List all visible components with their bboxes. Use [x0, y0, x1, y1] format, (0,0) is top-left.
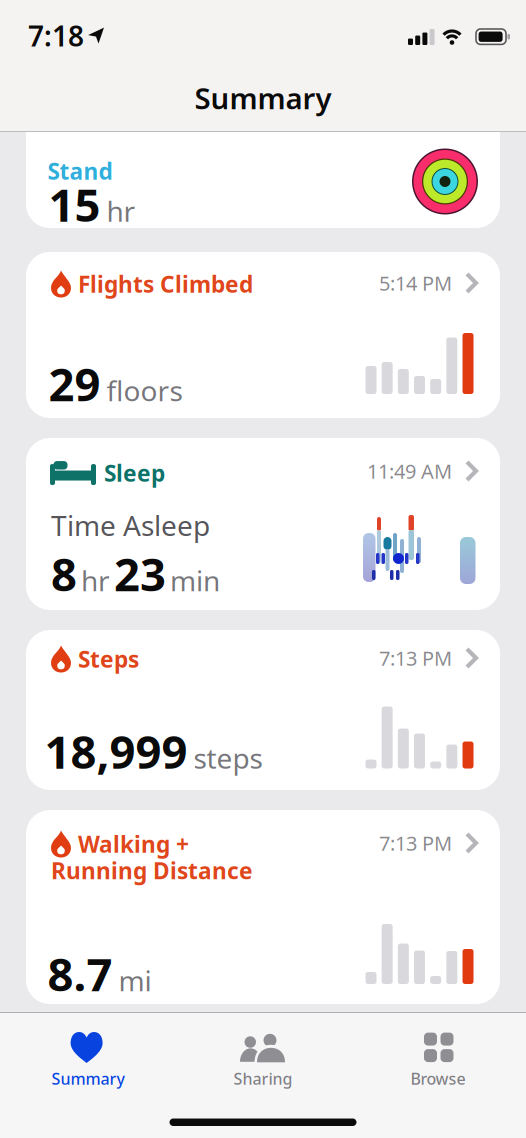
- staticText: 29: [48, 353, 100, 414]
- button[interactable]: Flights Climbed: [26, 252, 500, 418]
- staticText: floors: [106, 372, 182, 409]
- button[interactable]: Walking +: [26, 810, 500, 1004]
- staticText: Summary: [194, 78, 331, 117]
- staticText: 23: [114, 543, 166, 604]
- staticText: mi: [118, 962, 151, 999]
- staticText: Time Asleep: [51, 506, 210, 544]
- staticText: 7:13 PM: [379, 645, 452, 671]
- staticText: 18,999: [44, 721, 187, 781]
- staticText: 15: [48, 174, 100, 234]
- staticText: Steps: [78, 644, 139, 674]
- staticText: Summary: [51, 1068, 124, 1089]
- staticText: Browse: [410, 1068, 465, 1089]
- staticText: Stand: [47, 156, 112, 186]
- button[interactable]: Sharing: [188, 1020, 338, 1090]
- staticText: Flights Climbed: [78, 269, 253, 299]
- staticText: 7:13 PM: [379, 830, 452, 856]
- staticText: steps: [193, 739, 262, 776]
- staticText: min: [170, 562, 220, 599]
- button[interactable]: Browse: [363, 1020, 513, 1090]
- staticText: Sleep: [104, 458, 165, 488]
- staticText: Sharing: [233, 1068, 292, 1089]
- staticText: Walking +: [78, 829, 189, 859]
- staticText: hr: [81, 562, 110, 599]
- staticText: 7:18: [28, 17, 84, 54]
- staticText: hr: [106, 192, 135, 229]
- button[interactable]: Steps: [26, 630, 500, 790]
- staticText: 5:14 PM: [379, 270, 452, 296]
- staticText: 8: [51, 543, 77, 604]
- staticText: 11:49 AM: [367, 458, 452, 484]
- button[interactable]: Summary: [13, 1020, 163, 1090]
- staticText: 8.7: [47, 943, 112, 1004]
- button[interactable]: Stand: [26, 104, 500, 228]
- button[interactable]: Sleep: [26, 438, 500, 610]
- staticText: Running Distance: [51, 855, 253, 886]
